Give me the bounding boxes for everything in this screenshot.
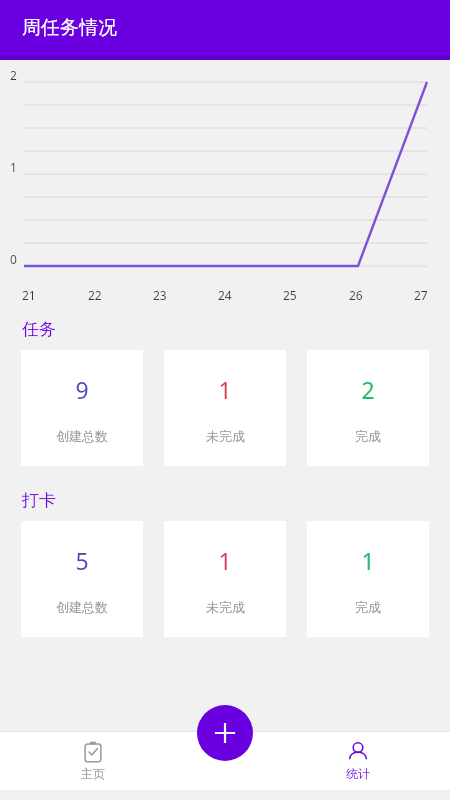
staticText: 1: [10, 159, 17, 175]
button[interactable]: 2: [307, 350, 429, 466]
staticText: 统计: [346, 766, 370, 781]
button[interactable]: 1: [164, 350, 286, 466]
staticText: 2: [10, 67, 17, 83]
staticText: 周任务情况: [22, 16, 117, 40]
button[interactable]: 主页: [0, 732, 185, 790]
staticText: 完成: [355, 428, 381, 444]
staticText: 2: [361, 374, 375, 405]
staticText: 22: [88, 287, 102, 303]
staticText: 未完成: [206, 599, 245, 615]
staticText: 21: [22, 287, 36, 303]
button[interactable]: 1: [164, 521, 286, 637]
staticText: 完成: [355, 599, 381, 615]
staticText: 5: [75, 545, 89, 576]
staticText: 未完成: [206, 428, 245, 444]
staticText: 1: [218, 545, 232, 576]
button[interactable]: 统计: [265, 732, 450, 790]
staticText: 1: [361, 545, 375, 576]
staticText: 打卡: [22, 490, 56, 511]
staticText: 任务: [22, 319, 56, 340]
staticText: 创建总数: [56, 428, 108, 444]
button[interactable]: 1: [307, 521, 429, 637]
staticText: 23: [153, 287, 167, 303]
staticText: 25: [283, 287, 297, 303]
staticText: 创建总数: [56, 599, 108, 615]
button[interactable]: 9: [21, 350, 143, 466]
button[interactable]: Add: [197, 705, 253, 761]
staticText: 27: [414, 287, 428, 303]
staticText: 0: [10, 251, 17, 267]
button[interactable]: 5: [21, 521, 143, 637]
staticText: 1: [218, 374, 232, 405]
staticText: 主页: [81, 766, 105, 781]
staticText: 24: [218, 287, 232, 303]
staticText: 9: [75, 374, 89, 405]
staticText: 26: [349, 287, 363, 303]
